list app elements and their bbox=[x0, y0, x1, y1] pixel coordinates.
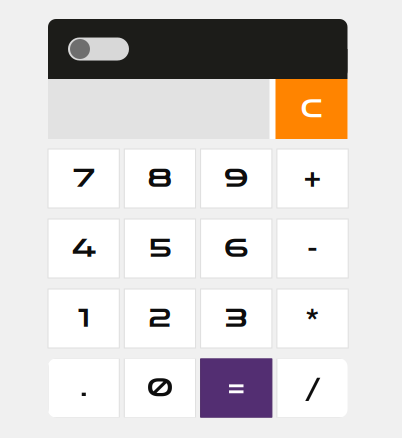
staticText: 4 bbox=[72, 233, 96, 264]
staticText: 7 bbox=[73, 163, 95, 194]
button[interactable]: 8 bbox=[124, 149, 196, 208]
staticText: * bbox=[305, 303, 319, 334]
staticText: 0 bbox=[147, 373, 173, 403]
button[interactable]: 3 bbox=[201, 289, 272, 348]
button[interactable]: C bbox=[275, 79, 347, 139]
button[interactable]: = bbox=[201, 358, 272, 417]
button[interactable]: - bbox=[277, 219, 348, 278]
button[interactable]: * bbox=[277, 289, 348, 348]
staticText: 5 bbox=[149, 233, 171, 264]
button[interactable]: . bbox=[48, 358, 119, 417]
button[interactable]: + bbox=[277, 149, 348, 208]
staticText: 2 bbox=[149, 303, 171, 334]
button[interactable]: 1 bbox=[48, 289, 119, 348]
button[interactable]: 9 bbox=[201, 149, 272, 208]
button[interactable]: 4 bbox=[48, 219, 119, 278]
staticText: . bbox=[80, 373, 87, 403]
staticText: C bbox=[301, 94, 322, 124]
staticText: = bbox=[228, 373, 245, 403]
button[interactable]: 7 bbox=[48, 149, 119, 208]
staticText: - bbox=[307, 233, 317, 264]
button[interactable]: 5 bbox=[124, 219, 196, 278]
staticText: / bbox=[305, 373, 320, 403]
staticText: 3 bbox=[225, 303, 247, 334]
staticText: 6 bbox=[224, 233, 248, 264]
staticText: 1 bbox=[78, 303, 89, 334]
button[interactable]: 2 bbox=[124, 289, 196, 348]
button[interactable]: 0 bbox=[124, 358, 196, 417]
button[interactable]: 6 bbox=[201, 219, 272, 278]
button[interactable]: / bbox=[277, 358, 348, 417]
button[interactable]: Toggle bbox=[68, 37, 129, 60]
staticText: + bbox=[304, 163, 321, 194]
staticText: 9 bbox=[224, 163, 248, 194]
staticText: 8 bbox=[147, 163, 173, 194]
